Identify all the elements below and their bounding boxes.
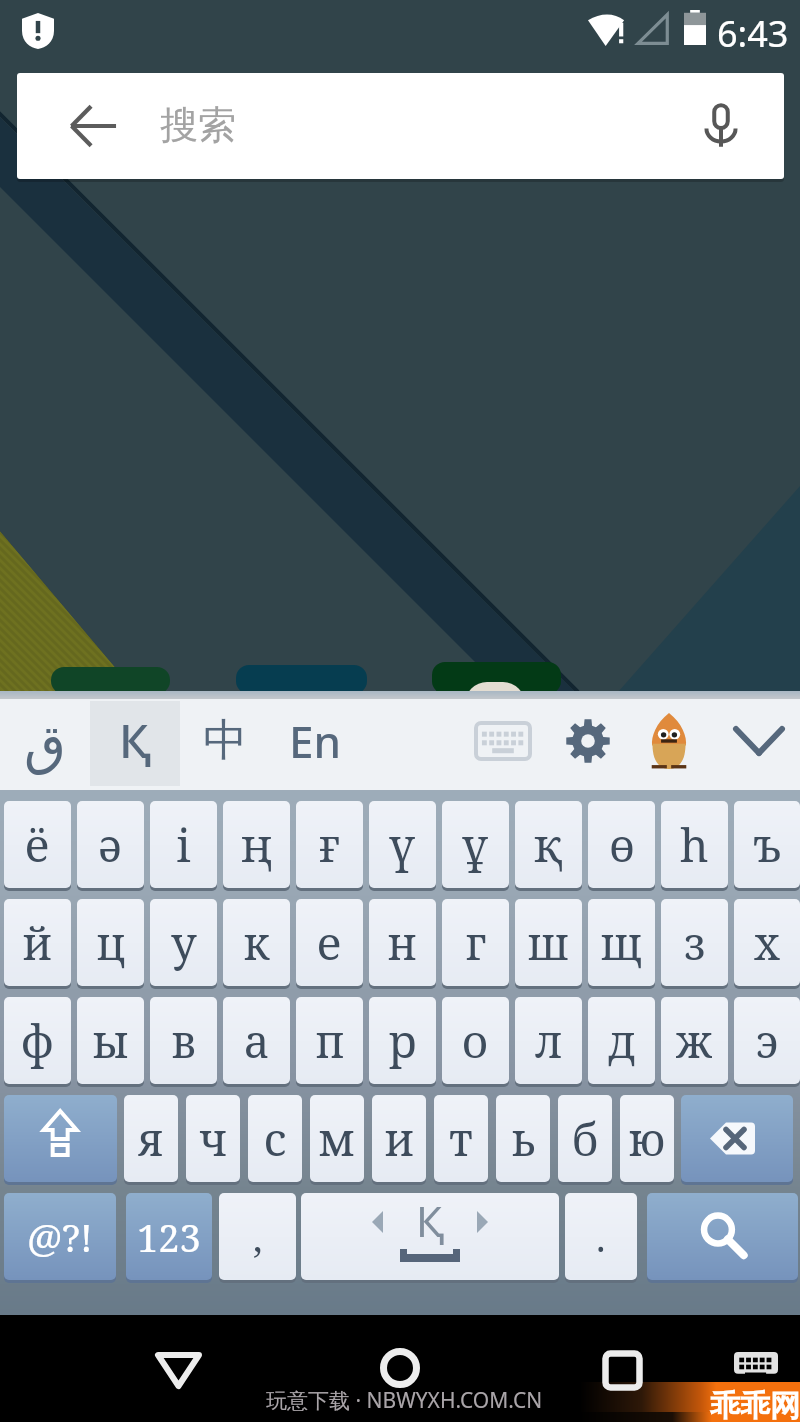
button[interactable]: ә: [77, 801, 144, 891]
staticText: ы: [92, 1010, 129, 1071]
button[interactable]: ь: [496, 1095, 550, 1185]
staticText: я: [138, 1108, 164, 1169]
staticText: п: [315, 1010, 345, 1071]
button[interactable]: ъ: [734, 801, 800, 891]
button[interactable]: Back: [17, 73, 784, 179]
staticText: 搜索: [160, 101, 236, 149]
staticText: м: [318, 1108, 356, 1169]
button[interactable]: к: [223, 899, 290, 989]
staticText: @?!: [27, 1211, 93, 1263]
button[interactable]: т: [434, 1095, 488, 1185]
staticText: х: [754, 912, 781, 973]
button[interactable]: х: [734, 899, 800, 989]
button[interactable]: ң: [223, 801, 290, 891]
button[interactable]: Emoji: [633, 691, 705, 790]
staticText: ,: [253, 1211, 263, 1263]
button[interactable]: ы: [77, 997, 144, 1087]
staticText: ф: [21, 1010, 54, 1071]
button[interactable]: а: [223, 997, 290, 1087]
button[interactable]: ұ: [442, 801, 509, 891]
staticText: в: [171, 1010, 196, 1071]
button[interactable]: ч: [186, 1095, 240, 1185]
button[interactable]: е: [296, 899, 363, 989]
staticText: ө: [609, 814, 635, 875]
button[interactable]: р: [369, 997, 436, 1087]
staticText: Қ: [416, 1193, 445, 1249]
button[interactable]: л: [515, 997, 582, 1087]
button[interactable]: қ: [515, 801, 582, 891]
button[interactable]: Search: [647, 1193, 798, 1283]
button[interactable]: ё: [4, 801, 71, 891]
button[interactable]: .: [565, 1193, 637, 1283]
staticText: қ: [534, 814, 563, 875]
staticText: л: [535, 1010, 563, 1071]
staticText: ч: [199, 1108, 228, 1169]
button[interactable]: Recents: [594, 1342, 650, 1398]
staticText: а: [244, 1010, 270, 1071]
button[interactable]: Settings: [552, 691, 624, 790]
button[interactable]: ю: [620, 1095, 674, 1185]
button[interactable]: @?!: [4, 1193, 116, 1283]
staticText: щ: [600, 912, 643, 973]
button[interactable]: д: [588, 997, 655, 1087]
button[interactable]: ц: [77, 899, 144, 989]
staticText: 乖乖网: [710, 1387, 800, 1422]
button[interactable]: ق: [0, 691, 90, 790]
staticText: у: [171, 912, 197, 973]
button[interactable]: Keyboard layout: [467, 691, 539, 790]
button[interactable]: Hide keyboard: [723, 691, 795, 790]
staticText: ш: [527, 912, 570, 973]
staticText: ё: [25, 814, 50, 875]
button[interactable]: 中: [180, 691, 270, 790]
button[interactable]: й: [4, 899, 71, 989]
button[interactable]: 123: [126, 1193, 212, 1283]
button[interactable]: Backspace: [681, 1095, 793, 1185]
button[interactable]: с: [248, 1095, 302, 1185]
staticText: һ: [680, 814, 709, 875]
staticText: з: [684, 912, 706, 973]
button[interactable]: щ: [588, 899, 655, 989]
button[interactable]: ө: [588, 801, 655, 891]
button[interactable]: м: [310, 1095, 364, 1185]
button[interactable]: и: [372, 1095, 426, 1185]
button[interactable]: б: [558, 1095, 612, 1185]
button[interactable]: Shift: [4, 1095, 117, 1185]
button[interactable]: ,: [219, 1193, 296, 1283]
staticText: ц: [96, 912, 126, 973]
button[interactable]: у: [150, 899, 217, 989]
button[interactable]: я: [124, 1095, 178, 1185]
button[interactable]: п: [296, 997, 363, 1087]
staticText: н: [387, 912, 418, 973]
staticText: .: [596, 1211, 606, 1263]
staticText: г: [465, 912, 487, 973]
button[interactable]: о: [442, 997, 509, 1087]
button[interactable]: Қ: [90, 691, 180, 790]
button[interactable]: э: [734, 997, 800, 1087]
staticText: ю: [628, 1108, 666, 1169]
button[interactable]: ф: [4, 997, 71, 1087]
button[interactable]: в: [150, 997, 217, 1087]
staticText: ь: [511, 1108, 536, 1169]
button[interactable]: App: [432, 662, 561, 694]
staticText: к: [243, 912, 270, 973]
button[interactable]: App: [236, 665, 367, 694]
button[interactable]: Space: [301, 1193, 559, 1283]
button[interactable]: һ: [661, 801, 728, 891]
button[interactable]: ш: [515, 899, 582, 989]
button[interactable]: ж: [661, 997, 728, 1087]
button[interactable]: Home: [372, 1340, 428, 1396]
button[interactable]: ү: [369, 801, 436, 891]
button[interactable]: Switch keyboard: [728, 1345, 784, 1385]
button[interactable]: Back: [150, 1342, 206, 1398]
button[interactable]: En: [270, 691, 360, 790]
button[interactable]: App: [51, 667, 170, 694]
button[interactable]: ғ: [296, 801, 363, 891]
button[interactable]: г: [442, 899, 509, 989]
button[interactable]: н: [369, 899, 436, 989]
button[interactable]: з: [661, 899, 728, 989]
button[interactable]: Back: [69, 102, 117, 150]
button[interactable]: і: [150, 801, 217, 891]
staticText: ъ: [753, 814, 781, 875]
staticText: ұ: [462, 814, 489, 875]
button[interactable]: Voice search: [695, 100, 747, 152]
